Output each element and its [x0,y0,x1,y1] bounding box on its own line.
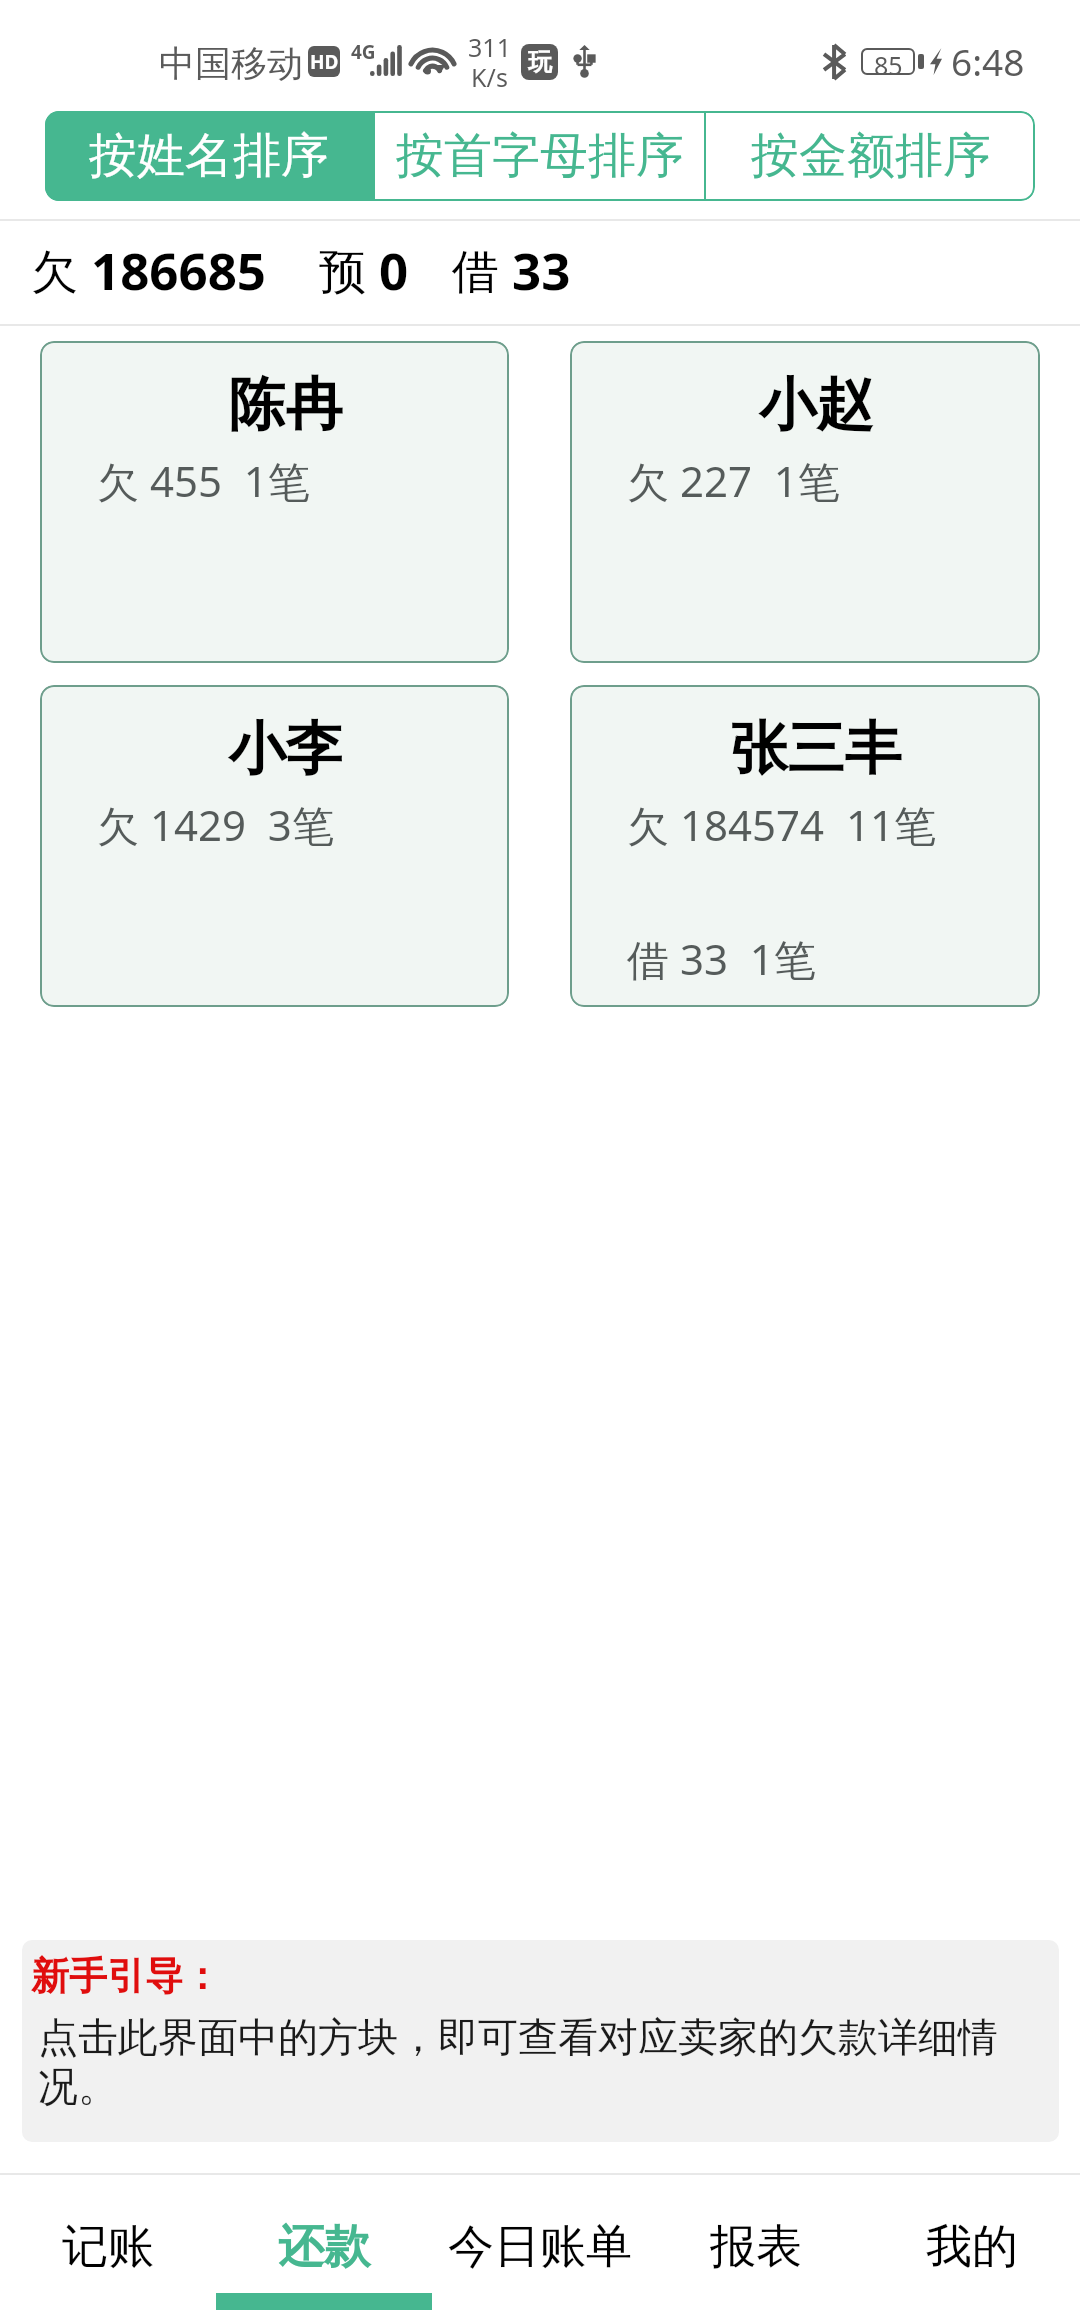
button[interactable]: 按金额排序 [706,111,1035,201]
staticText: 按首字母排序 [396,126,684,186]
staticText: 借 [452,238,512,302]
button[interactable]: 小李 [40,685,509,1007]
other: Battery 85 percent [861,48,924,75]
staticText: 点击此界面中的方块，即可查看对应卖家的欠款详细情况。 [38,2012,1015,2112]
other: Wi-Fi [412,43,453,77]
other: Charging [930,48,942,75]
staticText: 6:48 [951,36,1025,86]
staticText: 玩 [528,47,552,77]
staticText: 4G [351,39,376,65]
button[interactable]: 按首字母排序 [375,111,704,201]
button[interactable]: 今日账单 [432,2173,648,2310]
staticText: 0 [379,235,409,304]
button[interactable]: 按姓名排序 [45,111,373,201]
staticText: 还款 [278,2218,370,2276]
staticText: 陈冉 [97,369,474,441]
staticText: 欠 [31,238,91,302]
staticText: 记账 [62,2218,154,2276]
staticText: 小赵 [627,369,1005,441]
button[interactable]: 我的 [864,2173,1080,2310]
staticText: 按金额排序 [751,126,991,186]
staticText: HD [310,49,339,75]
staticText: 报表 [710,2218,802,2276]
staticText: 今日账单 [448,2218,632,2276]
staticText: 张三丰 [627,713,1005,785]
other: USB [574,45,595,78]
staticText: 欠 1429 3笔 [97,796,334,853]
button[interactable]: 小赵 [570,341,1040,663]
staticText: 新手引导： [31,1952,221,2000]
staticText: 欠 227 1笔 [627,452,840,509]
staticText: 欠 455 1笔 [97,452,310,509]
staticText: 85 [874,48,903,75]
staticText: 33 [512,235,571,304]
other: Bluetooth [824,45,845,79]
staticText: 我的 [926,2218,1018,2276]
staticText: 预 [319,238,379,302]
staticText: 中国移动 [159,41,303,86]
staticText: 186685 [91,235,267,304]
staticText: 311 K/s [468,30,511,94]
other: Mobile signal [370,45,402,76]
button[interactable]: 记账 [0,2173,216,2310]
staticText: 借 33 1笔 [627,930,816,987]
staticText: 欠 184574 11笔 [627,796,936,853]
staticText: 按姓名排序 [89,126,329,186]
staticText: 小李 [97,713,474,785]
button[interactable]: 陈冉 [40,341,509,663]
button[interactable]: 报表 [648,2173,864,2310]
button[interactable]: 张三丰 [570,685,1040,1007]
button[interactable]: 还款 [216,2173,432,2310]
